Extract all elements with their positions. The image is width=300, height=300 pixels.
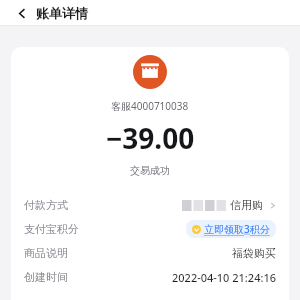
staticText: 2022-04-10 21:24:16 [172,270,276,285]
staticText: 立即领取3积分 [204,222,270,236]
button[interactable]: Back [12,3,32,23]
button[interactable]: 支付宝积分 [11,217,289,241]
button[interactable]: 付款方式 [11,193,289,217]
staticText: 商品说明 [24,246,68,260]
staticText: −39.00 [106,119,195,157]
staticText: 交易成功 [130,164,170,177]
staticText: 信用购 [230,198,263,212]
staticText: 支付宝积分 [24,222,79,236]
staticText: 客服4000710038 [111,99,189,113]
staticText: 福袋购买 [232,246,276,260]
staticText: 账单详情 [36,5,88,21]
staticText: 付款方式 [24,198,68,212]
staticText: 创建时间 [24,270,68,284]
other: Merchant [133,55,167,89]
